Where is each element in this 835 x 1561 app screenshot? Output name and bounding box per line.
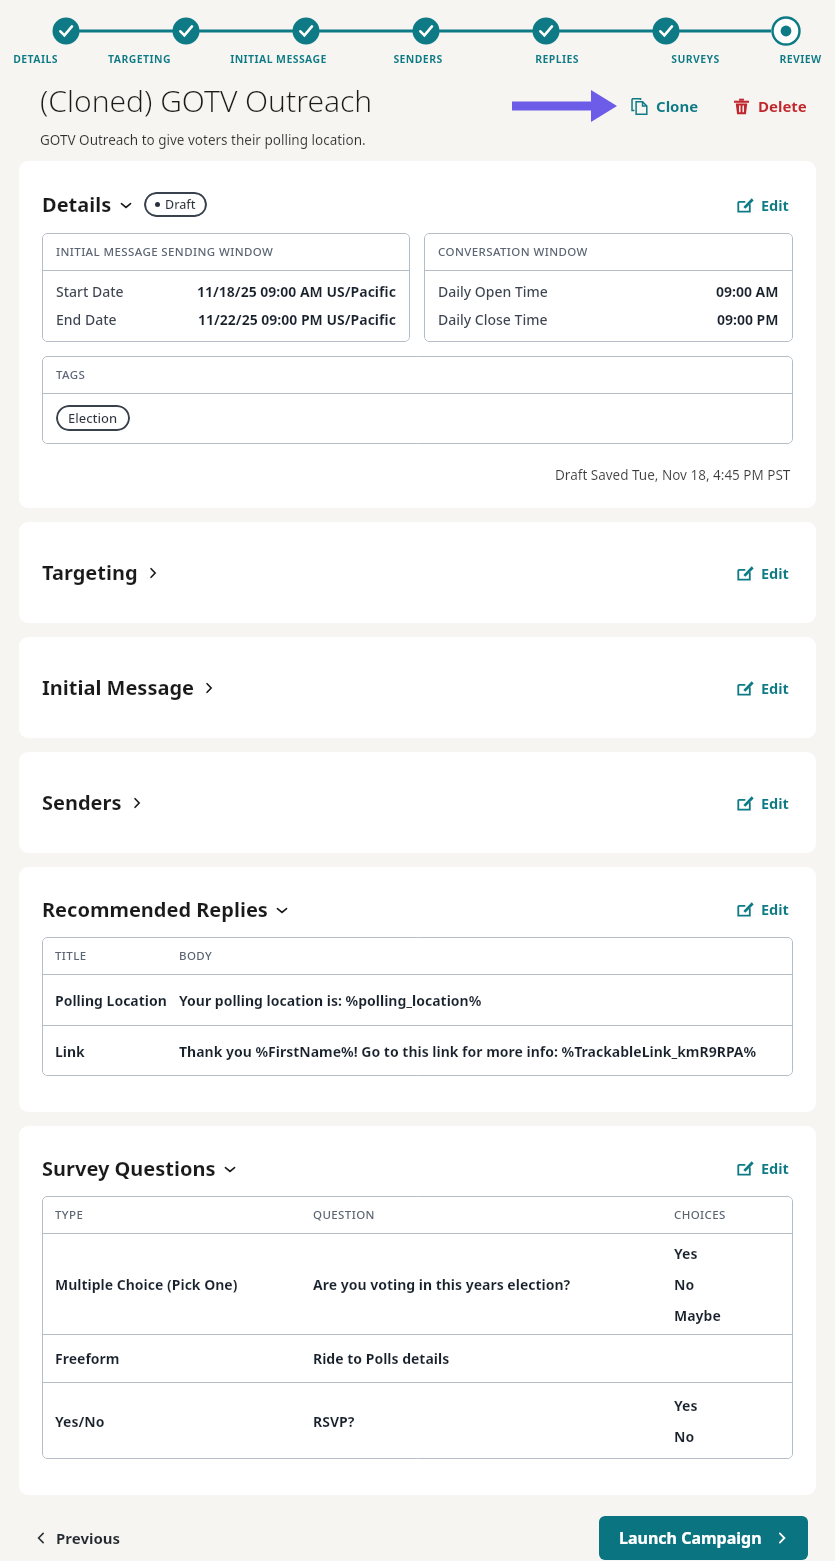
staticText: Your polling location is: %polling_locat… (179, 991, 482, 1010)
staticText: 09:00 PM (717, 310, 779, 329)
button[interactable]: Launch Campaign (599, 1516, 808, 1560)
staticText: INITIAL MESSAGE (230, 52, 327, 66)
button[interactable]: Targeting (19, 522, 816, 623)
button[interactable]: Previous (27, 1520, 129, 1556)
staticText: No (674, 1427, 695, 1446)
staticText: DETAILS (13, 52, 58, 66)
staticText: Survey Questions (42, 1155, 216, 1182)
staticText: Yes (674, 1396, 698, 1415)
staticText: Clone (656, 96, 699, 116)
staticText: CHOICES (674, 1207, 726, 1223)
button[interactable]: Initial Message (19, 637, 816, 738)
staticText: Details (42, 191, 112, 218)
staticText: Draft (165, 196, 196, 213)
button[interactable]: Edit (733, 1154, 793, 1182)
staticText: 11/22/25 09:00 PM US/Pacific (198, 310, 396, 329)
staticText: No (674, 1275, 695, 1294)
staticText: Edit (761, 195, 789, 215)
staticText: Targeting (42, 559, 138, 586)
staticText: 11/18/25 09:00 AM US/Pacific (197, 282, 396, 301)
staticText: 09:00 AM (716, 282, 779, 301)
button[interactable]: Delete (729, 92, 811, 120)
staticText: REPLIES (535, 52, 579, 66)
staticText: Maybe (674, 1306, 721, 1325)
staticText: Launch Campaign (619, 1527, 762, 1549)
staticText: Link (55, 1042, 85, 1061)
staticText: Edit (761, 793, 789, 813)
staticText: Thank you %FirstName%! Go to this link f… (179, 1042, 757, 1061)
staticText: Edit (761, 678, 789, 698)
staticText: RSVP? (313, 1412, 355, 1431)
staticText: Initial Message (42, 674, 194, 701)
staticText: Election (68, 409, 118, 427)
button[interactable]: Edit (733, 191, 793, 219)
staticText: Recommended Replies (42, 896, 268, 923)
staticText: Previous (56, 1528, 121, 1548)
other: Clone (631, 98, 648, 115)
staticText: QUESTION (313, 1207, 375, 1223)
staticText: Are you voting in this years election? (313, 1275, 571, 1294)
staticText: Yes (674, 1244, 698, 1263)
staticText: Yes/No (55, 1412, 105, 1431)
staticText: TAGS (56, 367, 86, 383)
staticText: SENDERS (393, 52, 443, 66)
staticText: SURVEYS (671, 52, 720, 66)
staticText: Edit (761, 563, 789, 583)
staticText: REVIEW (779, 52, 822, 66)
staticText: Multiple Choice (Pick One) (55, 1275, 238, 1294)
button[interactable]: Survey Questions (42, 1155, 236, 1182)
staticText: BODY (179, 948, 213, 964)
button[interactable]: Clone (627, 92, 703, 120)
staticText: Freeform (55, 1349, 120, 1368)
other: Delete (733, 98, 750, 115)
staticText: Start Date (56, 282, 124, 301)
staticText: Edit (761, 1158, 789, 1178)
button[interactable]: Election (68, 409, 118, 427)
staticText: Daily Close Time (438, 310, 548, 329)
staticText: Edit (761, 899, 789, 919)
staticText: Polling Location (55, 991, 167, 1010)
button[interactable]: Edit (733, 559, 793, 587)
staticText: INITIAL MESSAGE SENDING WINDOW (56, 244, 274, 260)
button[interactable]: Senders (19, 752, 816, 853)
button[interactable]: Edit (733, 789, 793, 817)
button[interactable]: Edit (733, 895, 793, 923)
staticText: Draft Saved Tue, Nov 18, 4:45 PM PST (555, 466, 791, 484)
staticText: GOTV Outreach to give voters their polli… (40, 131, 366, 149)
staticText: TYPE (55, 1207, 84, 1223)
staticText: TARGETING (108, 52, 171, 66)
staticText: Ride to Polls details (313, 1349, 450, 1368)
button[interactable]: Edit (733, 674, 793, 702)
button[interactable]: Recommended Replies (42, 896, 288, 923)
staticText: Delete (758, 96, 807, 116)
staticText: End Date (56, 310, 117, 329)
staticText: CONVERSATION WINDOW (438, 244, 588, 260)
staticText: TITLE (55, 948, 87, 964)
staticText: Senders (42, 789, 122, 816)
staticText: (Cloned) GOTV Outreach (40, 80, 373, 121)
staticText: Daily Open Time (438, 282, 548, 301)
